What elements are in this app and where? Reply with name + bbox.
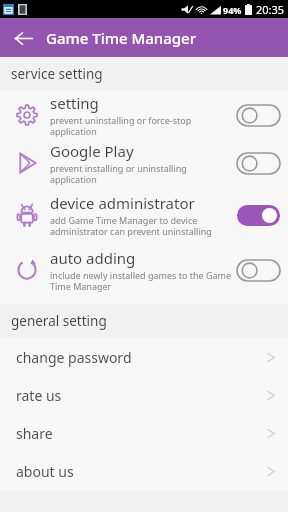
button[interactable]: Toggle off [237, 152, 280, 174]
button[interactable]: auto adding [0, 242, 288, 297]
staticText: setting [50, 93, 99, 113]
button[interactable]: about us [0, 452, 288, 490]
button[interactable]: Google Play [0, 139, 288, 187]
button[interactable]: Toggle off [237, 259, 280, 281]
staticText: rate us [16, 386, 267, 405]
staticText: 94% [223, 4, 242, 16]
button[interactable]: Toggle off [237, 104, 280, 126]
button[interactable]: device administrator [0, 187, 288, 242]
staticText: prevent installing or uninstalling appli… [50, 162, 231, 185]
staticText: service setting [11, 65, 103, 83]
button[interactable]: rate us [0, 376, 288, 414]
staticText: device administrator [50, 193, 195, 213]
staticText: add Game Time Manager to device administ… [50, 214, 231, 237]
staticText: Game Time Manager [46, 28, 196, 48]
staticText: prevent uninstalling or force-stop appli… [50, 114, 231, 137]
staticText: general setting [11, 312, 107, 330]
button[interactable]: change password [0, 338, 288, 376]
staticText: 20:35 [256, 2, 285, 17]
staticText: change password [16, 348, 267, 367]
staticText: include newly installed games to the Gam… [50, 269, 231, 292]
button[interactable]: share [0, 414, 288, 452]
button[interactable]: setting [0, 91, 288, 139]
button[interactable]: Toggle on [237, 204, 280, 226]
staticText: about us [16, 462, 267, 481]
staticText: auto adding [50, 248, 136, 268]
staticText: Google Play [50, 141, 134, 161]
staticText: share [16, 424, 267, 443]
button[interactable]: Back [8, 23, 38, 53]
